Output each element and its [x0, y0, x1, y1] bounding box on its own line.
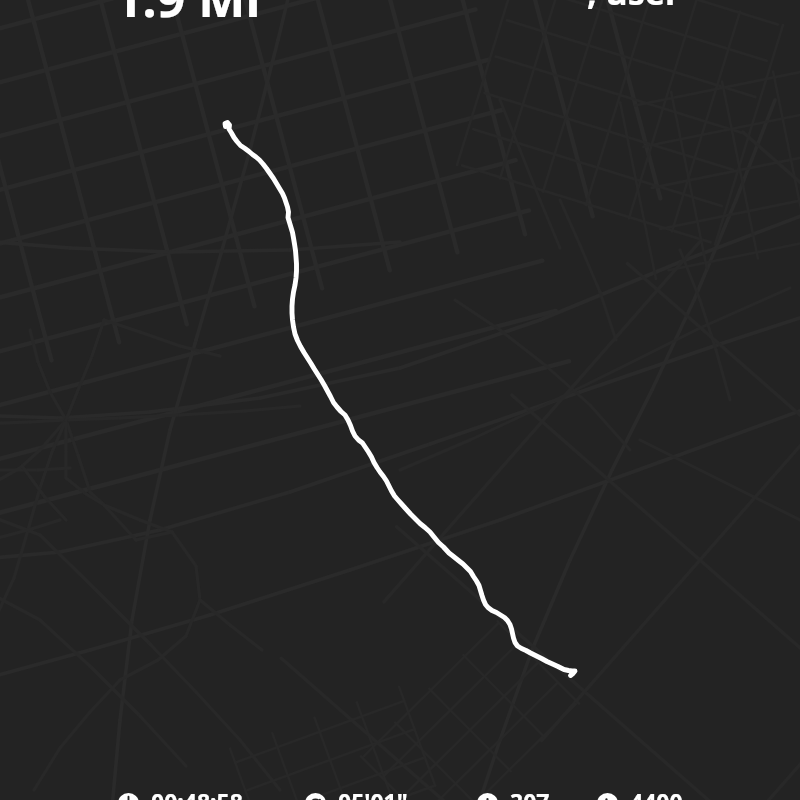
button[interactable]: Average pace 5 minutes 1 second per kilo…: [305, 788, 408, 800]
button[interactable]: 1.9 Mi: [114, 0, 261, 32]
staticText: 05'01": [338, 786, 408, 800]
button[interactable]: Duration 00:48:58: [118, 788, 243, 800]
button[interactable]: Steps 4400: [597, 788, 683, 800]
button[interactable]: , user: [587, 0, 681, 15]
button[interactable]: Calories 307: [477, 788, 550, 800]
staticText: 4400: [630, 786, 683, 800]
staticText: 307: [510, 786, 550, 800]
staticText: 00:48:58: [151, 786, 243, 800]
